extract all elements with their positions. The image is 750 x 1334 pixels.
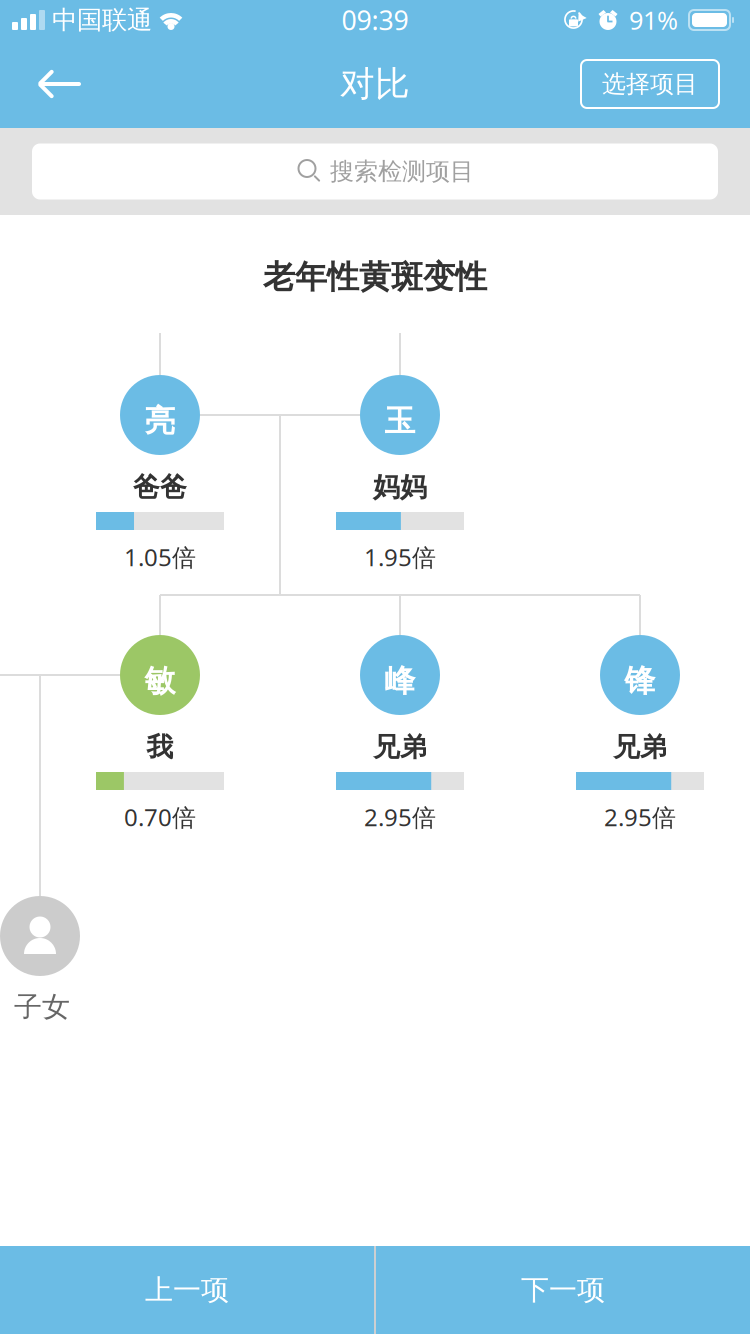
staticText: 峰 bbox=[384, 662, 415, 700]
staticText: 1.05倍 bbox=[124, 541, 196, 573]
button[interactable]: 敏 bbox=[120, 635, 200, 715]
staticText: 对比 bbox=[340, 63, 410, 105]
button[interactable]: 上一项 bbox=[0, 1246, 374, 1334]
staticText: 兄弟 bbox=[613, 731, 667, 763]
staticText: 下一项 bbox=[521, 1273, 605, 1307]
button[interactable]: 峰 bbox=[360, 635, 440, 715]
staticText: 上一项 bbox=[145, 1273, 229, 1307]
staticText: 玉 bbox=[384, 402, 415, 440]
staticText: 选择项目 bbox=[602, 69, 698, 99]
button[interactable]: 玉 bbox=[360, 375, 440, 455]
staticText: 我 bbox=[146, 731, 173, 763]
staticText: 老年性黄斑变性 bbox=[263, 257, 487, 297]
staticText: 子女 bbox=[14, 990, 70, 1024]
staticText: 2.95倍 bbox=[604, 801, 676, 833]
button[interactable]: 返回 bbox=[0, 48, 102, 120]
staticText: 亮 bbox=[144, 402, 175, 440]
staticText: 0.70倍 bbox=[124, 801, 196, 833]
staticText: 91% bbox=[629, 3, 678, 37]
button[interactable]: 亮 bbox=[120, 375, 200, 455]
staticText: 中国联通 bbox=[52, 4, 152, 35]
button[interactable]: 子女 bbox=[0, 896, 80, 976]
staticText: 敏 bbox=[144, 662, 175, 700]
staticText: 兄弟 bbox=[373, 731, 427, 763]
staticText: 锋 bbox=[624, 662, 655, 700]
staticText: 09:39 bbox=[341, 2, 408, 38]
button[interactable]: 选择项目 bbox=[581, 60, 719, 108]
button[interactable]: 下一项 bbox=[376, 1246, 750, 1334]
staticText: 2.95倍 bbox=[364, 801, 436, 833]
button[interactable]: 搜索检测项目 bbox=[32, 143, 718, 199]
staticText: 搜索检测项目 bbox=[330, 157, 474, 186]
staticText: 妈妈 bbox=[373, 471, 427, 503]
staticText: 爸爸 bbox=[133, 471, 187, 503]
staticText: 1.95倍 bbox=[364, 541, 436, 573]
button[interactable]: 锋 bbox=[600, 635, 680, 715]
